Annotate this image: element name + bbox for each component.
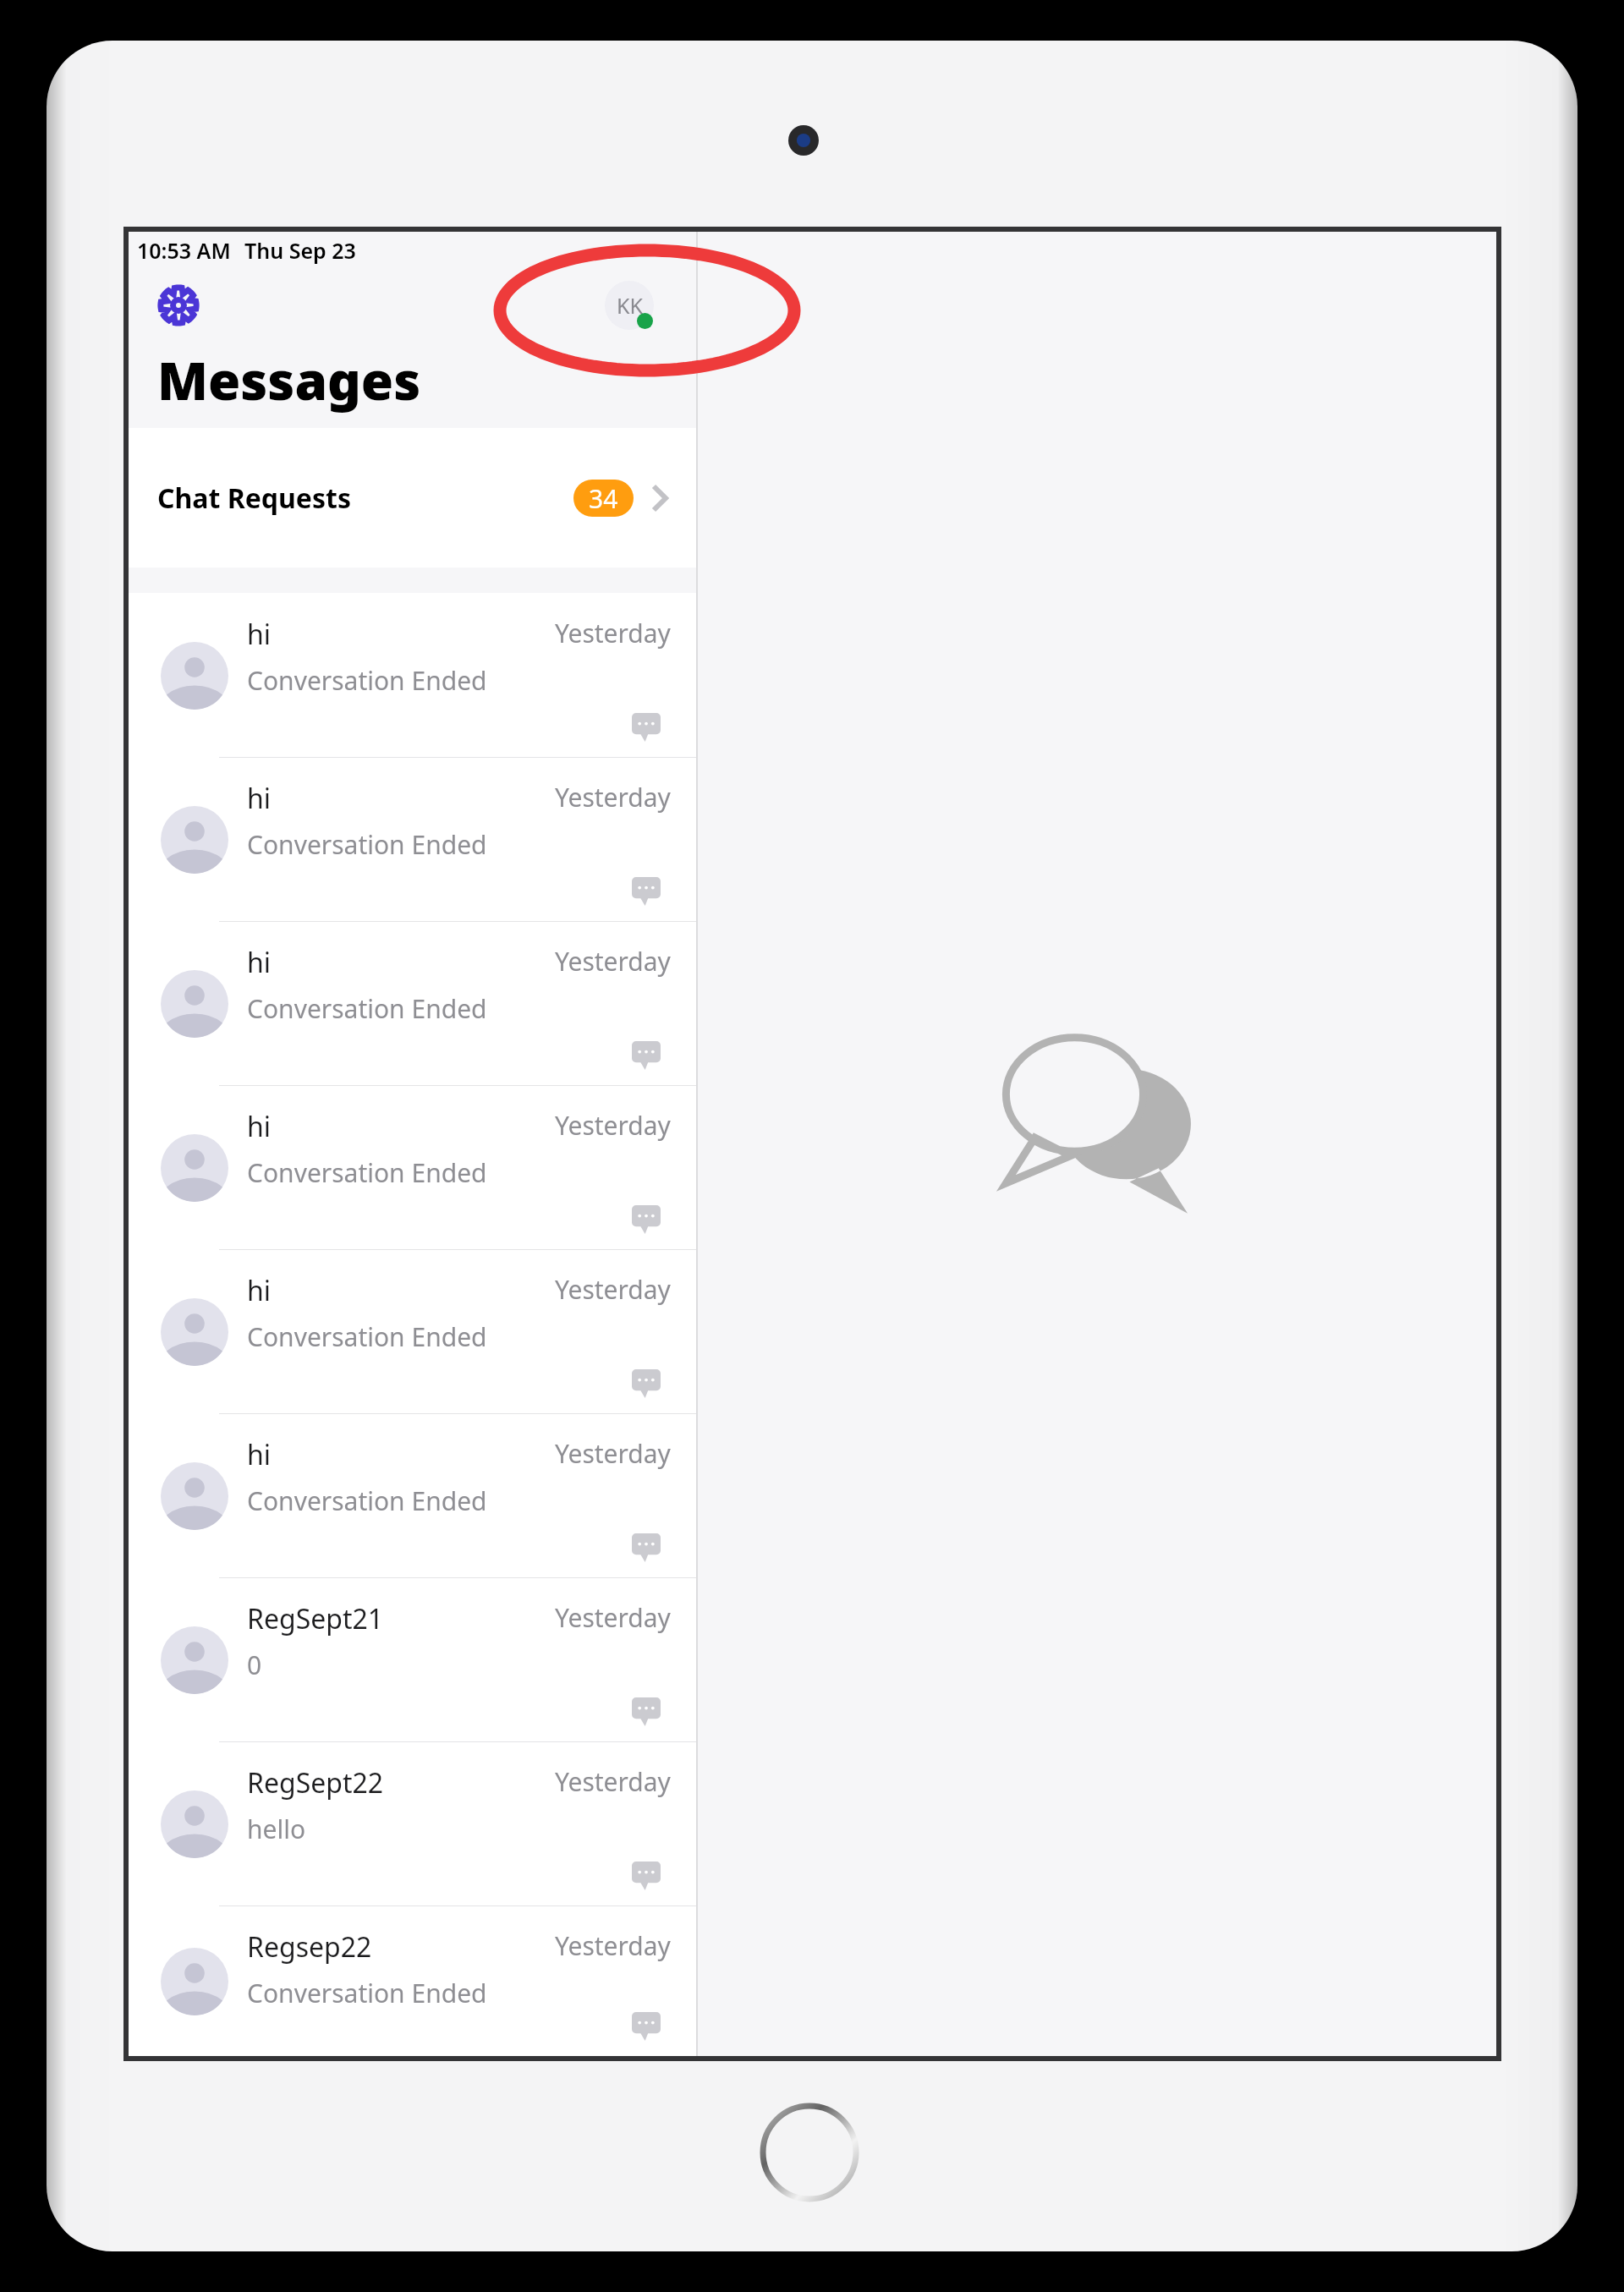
staticText: KK (617, 291, 643, 320)
button[interactable]: hi (129, 1085, 696, 1249)
staticText: Yesterday (555, 1272, 671, 1307)
button[interactable]: hi (129, 1413, 696, 1577)
button[interactable]: hi (129, 593, 696, 757)
staticText: Yesterday (555, 1108, 671, 1143)
staticText: 10:53 AM (137, 236, 231, 265)
staticText: Yesterday (555, 944, 671, 979)
staticText: Yesterday (555, 1436, 671, 1471)
staticText: Messages (157, 344, 421, 415)
button[interactable]: RegSept21 (129, 1577, 696, 1741)
button[interactable]: Chat Requests (129, 428, 696, 568)
button[interactable]: hi (129, 757, 696, 921)
button[interactable]: Settings (154, 281, 203, 330)
staticText: 0 (247, 1648, 262, 1682)
staticText: Thu Sep 23 (244, 236, 356, 265)
staticText: RegSept21 (247, 1600, 384, 1637)
staticText: Regsep22 (247, 1928, 372, 1966)
staticText: hi (247, 780, 272, 817)
staticText: Yesterday (555, 780, 671, 814)
staticText: Conversation Ended (247, 1319, 487, 1354)
staticText: Conversation Ended (247, 1155, 487, 1190)
staticText: Yesterday (555, 1764, 671, 1799)
staticText: hello (247, 1812, 306, 1846)
staticText: hi (247, 1272, 272, 1309)
button[interactable]: RegSept22 (129, 1741, 696, 1905)
staticText: hi (247, 1436, 272, 1473)
staticText: Conversation Ended (247, 827, 487, 862)
staticText: Yesterday (555, 1928, 671, 1963)
button[interactable]: Regsep22 (129, 1905, 696, 2056)
staticText: 34 (589, 481, 618, 516)
staticText: Chat Requests (157, 480, 351, 517)
button[interactable]: Profile KK (605, 281, 654, 330)
staticText: Conversation Ended (247, 1483, 487, 1518)
staticText: Conversation Ended (247, 991, 487, 1026)
staticText: RegSept22 (247, 1764, 384, 1801)
button[interactable]: hi (129, 921, 696, 1085)
staticText: Yesterday (555, 1600, 671, 1635)
staticText: hi (247, 944, 272, 981)
staticText: Conversation Ended (247, 663, 487, 698)
staticText: Yesterday (555, 616, 671, 650)
staticText: Conversation Ended (247, 1976, 487, 2010)
button[interactable]: hi (129, 1249, 696, 1413)
staticText: hi (247, 616, 272, 653)
staticText: hi (247, 1108, 272, 1145)
